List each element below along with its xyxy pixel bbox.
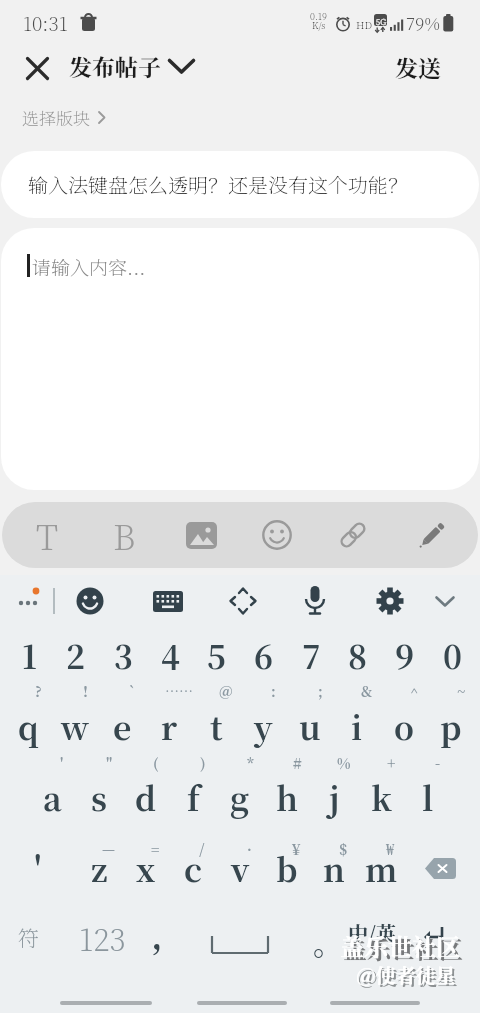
- staticText: q: [18, 703, 39, 749]
- staticText: ): [200, 753, 206, 773]
- staticText: p: [440, 703, 462, 749]
- staticText: 选择版块: [22, 105, 90, 129]
- button[interactable]: [412, 915, 456, 955]
- button[interactable]: B: [94, 506, 154, 564]
- button[interactable]: q: [0, 700, 58, 752]
- staticText: f: [187, 774, 200, 820]
- button[interactable]: 请输入内容...: [1, 228, 479, 490]
- button[interactable]: p: [421, 700, 480, 752]
- button[interactable]: 发送: [385, 48, 451, 86]
- staticText: 中/英: [348, 918, 396, 947]
- button[interactable]: m: [351, 842, 411, 894]
- button[interactable]: n: [304, 842, 364, 894]
- button[interactable]: j: [304, 771, 364, 823]
- staticText: ,: [151, 910, 163, 959]
- staticText: 盖乐世社区: [343, 931, 463, 965]
- staticText: 请输入内容...: [32, 253, 146, 280]
- staticText: (: [153, 753, 159, 773]
- button[interactable]: 9: [375, 629, 435, 681]
- button[interactable]: h: [257, 771, 317, 823]
- button[interactable]: 。: [298, 915, 358, 967]
- button[interactable]: [420, 852, 460, 884]
- staticText: 5G: [376, 16, 387, 27]
- button[interactable]: a: [22, 771, 82, 823]
- button[interactable]: k: [351, 771, 411, 823]
- button[interactable]: [247, 506, 307, 564]
- staticText: @使者徒星: [358, 962, 458, 991]
- button[interactable]: [295, 581, 335, 621]
- staticText: d: [135, 774, 157, 820]
- button[interactable]: 3: [93, 629, 153, 681]
- staticText: 9: [395, 632, 415, 678]
- staticText: —: [102, 839, 115, 859]
- button[interactable]: [223, 581, 263, 621]
- button[interactable]: 7: [281, 629, 341, 681]
- button[interactable]: l: [398, 771, 458, 823]
- button[interactable]: 中/英: [342, 906, 402, 958]
- button[interactable]: [70, 581, 110, 621]
- button[interactable]: 8: [328, 629, 388, 681]
- button[interactable]: [171, 506, 231, 564]
- button[interactable]: 6: [234, 629, 294, 681]
- button[interactable]: 4: [140, 629, 200, 681]
- staticText: i: [351, 703, 363, 749]
- button[interactable]: [19, 50, 55, 86]
- button[interactable]: c: [163, 842, 223, 894]
- staticText: k: [371, 774, 392, 820]
- staticText: `: [129, 681, 136, 701]
- button[interactable]: r: [139, 700, 199, 752]
- staticText: v: [231, 845, 250, 891]
- button[interactable]: ': [8, 840, 68, 892]
- staticText: %: [337, 753, 351, 773]
- staticText: HD: [356, 17, 373, 31]
- button[interactable]: g: [210, 771, 270, 823]
- button[interactable]: [148, 581, 188, 621]
- button[interactable]: [8, 585, 48, 617]
- button[interactable]: 2: [46, 629, 106, 681]
- button[interactable]: [60, 1001, 152, 1005]
- button[interactable]: 0: [422, 629, 480, 681]
- button[interactable]: 5: [187, 629, 247, 681]
- button[interactable]: [330, 1001, 420, 1005]
- button[interactable]: s: [69, 771, 129, 823]
- button[interactable]: 1: [0, 629, 59, 681]
- button[interactable]: i: [327, 700, 387, 752]
- button[interactable]: [370, 581, 410, 621]
- staticText: /: [199, 839, 205, 859]
- button[interactable]: o: [374, 700, 434, 752]
- button[interactable]: 123: [72, 911, 132, 963]
- button[interactable]: d: [116, 771, 176, 823]
- button[interactable]: 发布帖子: [69, 50, 195, 83]
- button[interactable]: y: [233, 700, 293, 752]
- button[interactable]: 输入法键盘怎么透明？还是没有这个功能？: [1, 151, 479, 218]
- button[interactable]: t: [186, 700, 246, 752]
- staticText: :: [271, 681, 276, 701]
- button[interactable]: [427, 583, 463, 619]
- button[interactable]: x: [116, 842, 176, 894]
- button[interactable]: [402, 506, 462, 564]
- button[interactable]: 符: [0, 911, 58, 963]
- button[interactable]: u: [280, 700, 340, 752]
- button[interactable]: f: [163, 771, 223, 823]
- staticText: 8: [348, 632, 368, 678]
- button[interactable]: z: [69, 842, 129, 894]
- button[interactable]: b: [257, 842, 317, 894]
- button[interactable]: T: [17, 506, 77, 564]
- staticText: 输入法键盘怎么透明？还是没有这个功能？: [28, 170, 408, 199]
- button[interactable]: w: [45, 700, 105, 752]
- staticText: &: [361, 681, 373, 701]
- button[interactable]: 选择版块: [22, 105, 106, 129]
- button[interactable]: [323, 506, 383, 564]
- button[interactable]: e: [92, 700, 152, 752]
- staticText: y: [254, 703, 273, 749]
- button[interactable]: ,: [127, 908, 187, 960]
- staticText: ·: [247, 839, 252, 859]
- button[interactable]: [197, 1001, 287, 1005]
- button[interactable]: [200, 920, 280, 960]
- staticText: t: [210, 703, 223, 749]
- staticText: !: [83, 681, 88, 701]
- staticText: j: [329, 774, 340, 820]
- button[interactable]: v: [210, 842, 270, 894]
- staticText: 1: [22, 632, 37, 678]
- staticText: g: [230, 774, 250, 820]
